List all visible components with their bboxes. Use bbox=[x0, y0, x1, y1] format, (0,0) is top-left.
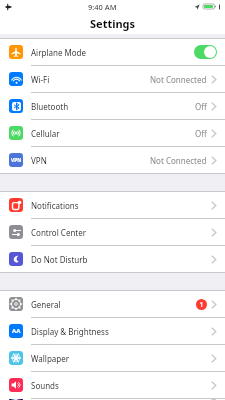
staticText: Off bbox=[195, 128, 207, 139]
staticText: Settings bbox=[90, 16, 136, 31]
button[interactable]: AA bbox=[0, 318, 225, 345]
staticText: 9:40 AM bbox=[88, 2, 117, 12]
button[interactable]: Airplane Mode bbox=[0, 39, 225, 66]
staticText: VPN bbox=[11, 157, 22, 164]
staticText: General bbox=[31, 299, 61, 310]
staticText: Wallpaper bbox=[31, 353, 70, 364]
staticText: Wi-Fi bbox=[31, 74, 50, 85]
button[interactable]: Cellular bbox=[0, 120, 225, 147]
staticText: Bluetooth bbox=[31, 101, 69, 112]
button[interactable]: Airplane Mode toggle bbox=[194, 45, 217, 59]
button[interactable]: Control Center bbox=[0, 219, 225, 246]
button[interactable]: Siri & Search bbox=[0, 399, 225, 400]
button[interactable]: Bluetooth bbox=[0, 93, 225, 120]
staticText: Sounds bbox=[31, 380, 59, 391]
staticText: 1 bbox=[199, 300, 204, 310]
staticText: Do Not Disturb bbox=[31, 254, 88, 265]
staticText: Off bbox=[195, 101, 207, 112]
staticText: Not Connected bbox=[150, 155, 207, 166]
staticText: VPN bbox=[31, 155, 47, 166]
staticText: Airplane Mode bbox=[31, 47, 87, 58]
staticText: Cellular bbox=[31, 128, 60, 139]
button[interactable]: VPN bbox=[0, 147, 225, 173]
button[interactable]: Wi-Fi bbox=[0, 66, 225, 93]
button[interactable]: Sounds bbox=[0, 372, 225, 399]
button[interactable]: Notifications bbox=[0, 192, 225, 219]
button[interactable]: Wallpaper bbox=[0, 345, 225, 372]
staticText: Not Connected bbox=[150, 74, 207, 85]
staticText: Notifications bbox=[31, 200, 79, 211]
staticText: AA bbox=[12, 327, 21, 335]
staticText: Control Center bbox=[31, 227, 87, 238]
button[interactable]: Do Not Disturb bbox=[0, 246, 225, 272]
button[interactable]: General bbox=[0, 291, 225, 318]
staticText: Display & Brightness bbox=[31, 326, 109, 337]
